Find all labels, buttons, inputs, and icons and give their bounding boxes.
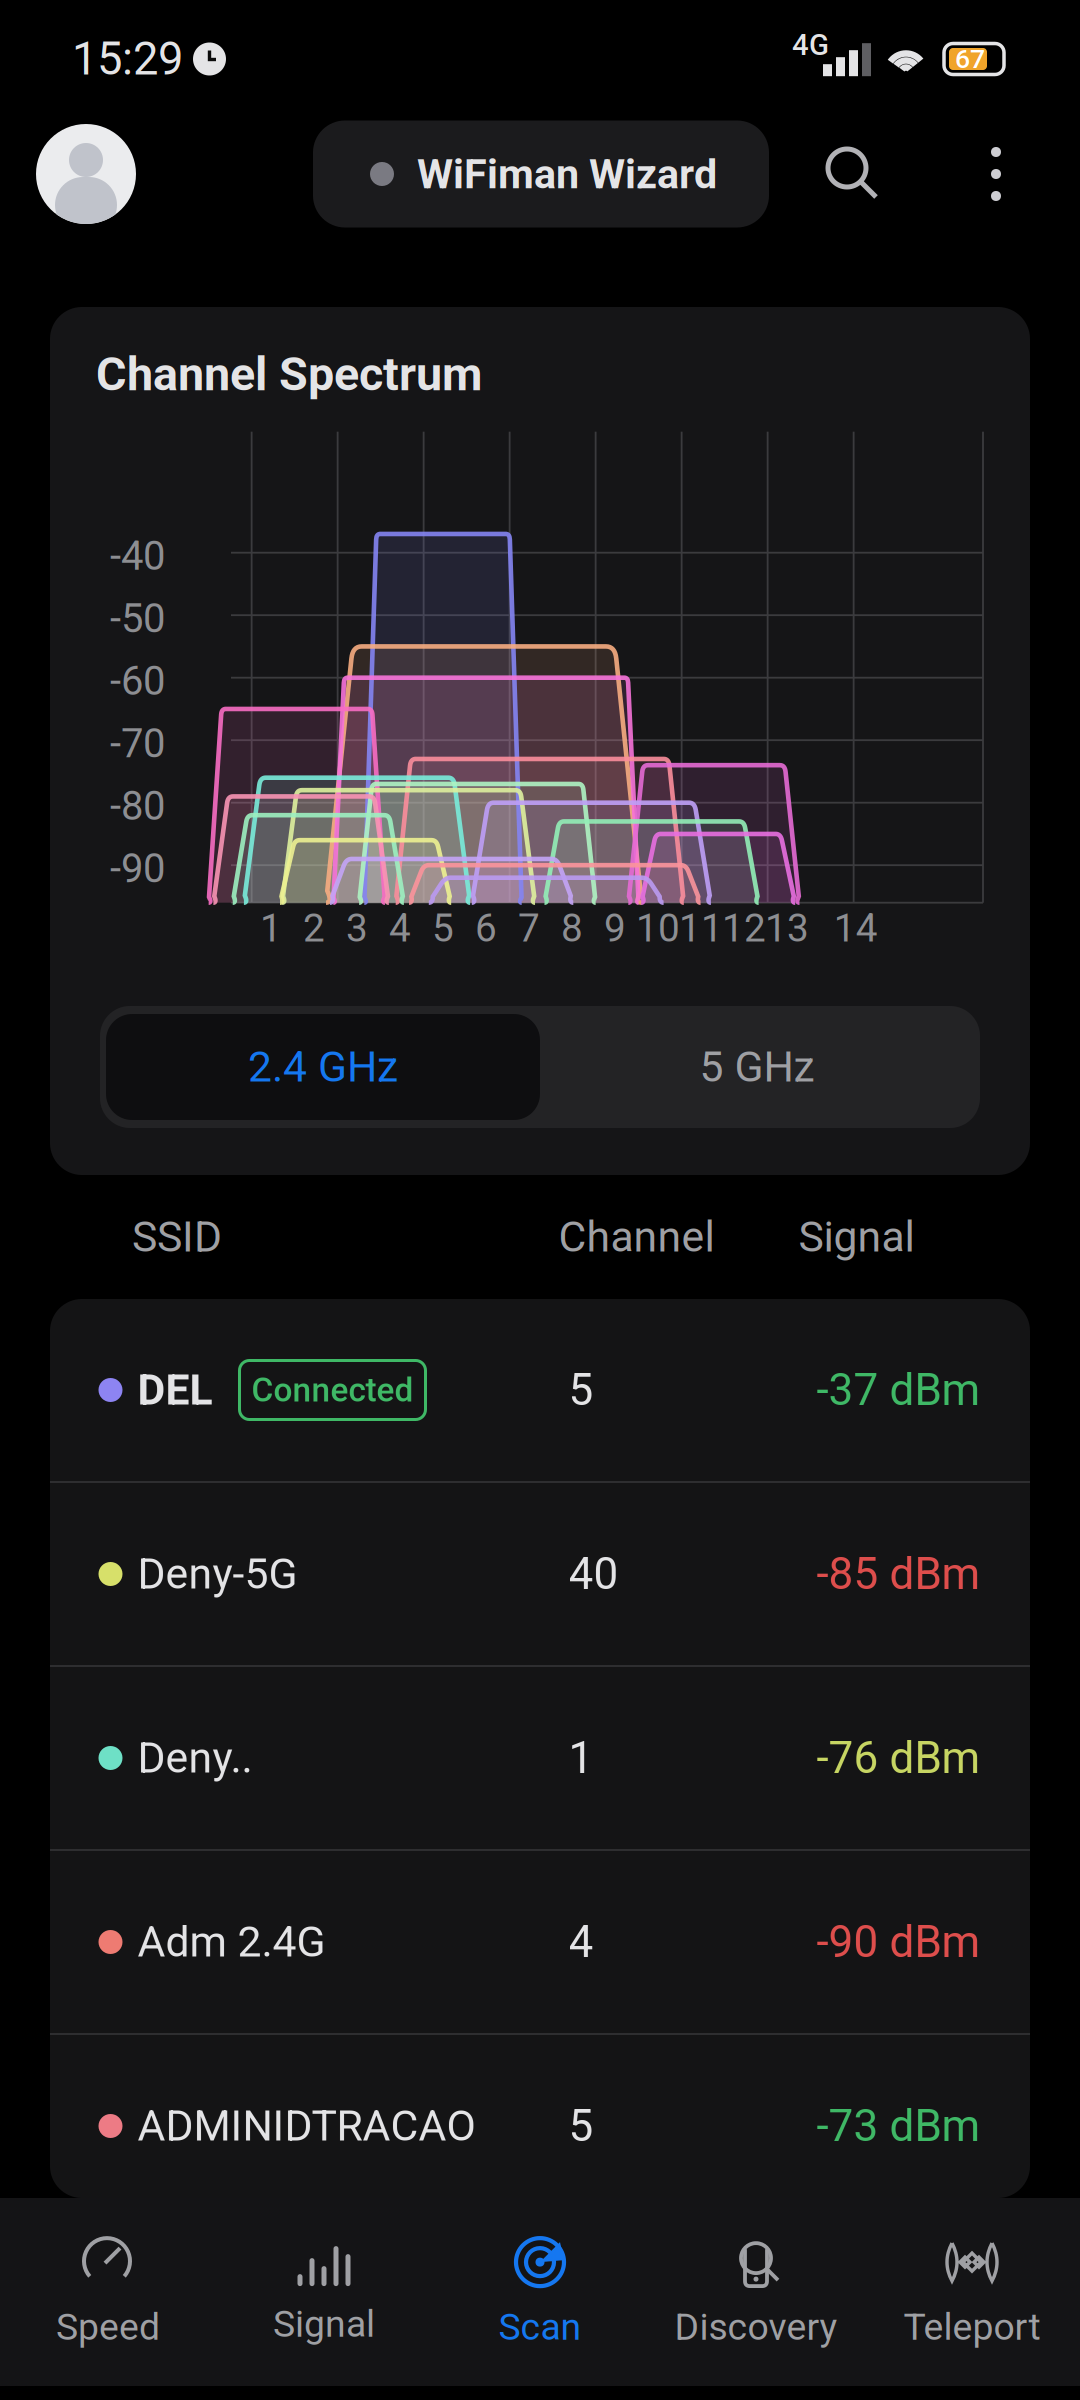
staticText: 9 [604, 906, 626, 951]
staticText: -40 [110, 533, 165, 580]
button[interactable]: DEL [62, 1299, 1017, 1481]
staticText: 4G [792, 28, 829, 62]
button[interactable]: WiFiman Wizard [313, 120, 769, 227]
staticText: 67 [955, 43, 985, 75]
staticText: 7 [518, 906, 540, 951]
staticText: 4 [389, 906, 411, 951]
button[interactable]: Scan [432, 2207, 648, 2377]
staticText: 3 [346, 906, 368, 951]
staticText: Discovery [674, 2305, 837, 2349]
staticText: DEL [137, 1365, 212, 1415]
staticText: -90 dBm [816, 1916, 980, 1968]
staticText: Channel [558, 1212, 714, 1262]
button[interactable]: Search [825, 124, 881, 224]
button[interactable]: Discovery [648, 2207, 864, 2377]
button[interactable]: 2.4 GHz [106, 1014, 540, 1120]
staticText: 10 [636, 906, 680, 951]
staticText: 5 [568, 2100, 593, 2152]
staticText: ADMINIDTRACAO [137, 2101, 475, 2151]
button[interactable]: Account [36, 124, 136, 224]
staticText: SSID [132, 1212, 222, 1262]
staticText: -60 [110, 658, 165, 705]
staticText: 5 GHz [699, 1042, 814, 1092]
staticText: 40 [568, 1548, 618, 1600]
staticText: -80 [110, 783, 165, 830]
staticText: 1 [568, 1732, 593, 1784]
staticText: Connected [251, 1370, 413, 1410]
staticText: -85 dBm [816, 1548, 980, 1600]
staticText: 8 [561, 906, 583, 951]
button[interactable]: Signal [216, 2207, 432, 2377]
button[interactable]: Deny-5G [62, 1483, 1017, 1665]
staticText: 4 [568, 1916, 593, 1968]
staticText: Adm 2.4G [137, 1917, 325, 1967]
staticText: 2 [303, 906, 325, 951]
staticText: 5 [568, 1364, 593, 1416]
staticText: Signal [273, 2302, 375, 2346]
staticText: -37 dBm [816, 1364, 980, 1416]
button[interactable]: ADMINIDTRACAO [62, 2035, 1017, 2217]
staticText: Teleport [903, 2305, 1040, 2349]
staticText: Deny-5G [137, 1549, 297, 1599]
staticText: Channel Spectrum [96, 347, 482, 402]
staticText: -70 [110, 720, 165, 767]
staticText: 2.4 GHz [248, 1042, 398, 1092]
staticText: Speed [56, 2305, 160, 2349]
staticText: 14 [834, 906, 878, 951]
staticText: 6 [475, 906, 497, 951]
button[interactable]: Teleport [864, 2207, 1080, 2377]
staticText: -90 [110, 845, 165, 892]
staticText: 1 [260, 906, 282, 951]
staticText: 15:29 [72, 32, 183, 85]
staticText: Signal [798, 1212, 914, 1262]
staticText: Scan [498, 2305, 581, 2349]
staticText: WiFiman Wizard [417, 150, 717, 198]
staticText: Deny.. [137, 1733, 252, 1783]
button[interactable]: Speed [0, 2207, 216, 2377]
staticText: -50 [110, 595, 165, 642]
staticText: 5 [432, 906, 454, 951]
button[interactable]: More options [974, 124, 1018, 224]
staticText: 13 [765, 906, 809, 951]
staticText: 11 [679, 906, 723, 951]
staticText: -76 dBm [816, 1732, 980, 1784]
button[interactable]: 5 GHz [540, 1014, 974, 1120]
button[interactable]: Deny.. [62, 1667, 1017, 1849]
staticText: 12 [722, 906, 766, 951]
staticText: -73 dBm [816, 2100, 980, 2152]
button[interactable]: Adm 2.4G [62, 1851, 1017, 2033]
